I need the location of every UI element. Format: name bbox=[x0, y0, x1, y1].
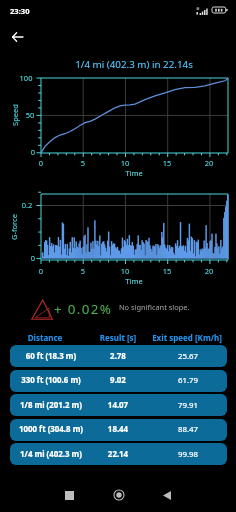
button[interactable] bbox=[10, 419, 227, 441]
staticText: G-force bbox=[9, 207, 19, 247]
staticText: 0.2 bbox=[15, 200, 39, 210]
staticText: 0 bbox=[21, 253, 45, 263]
staticText: Exit speed [Km/h] bbox=[137, 332, 236, 343]
staticText: 15 bbox=[155, 158, 179, 168]
staticText: 25.67 bbox=[158, 351, 218, 362]
staticText: 88.47 bbox=[158, 424, 218, 435]
staticText: 10 bbox=[113, 266, 137, 276]
button[interactable] bbox=[10, 443, 227, 465]
staticText: 5 bbox=[71, 158, 95, 168]
staticText: 79.91 bbox=[158, 400, 218, 411]
staticText: Speed bbox=[10, 95, 20, 135]
staticText: 20 bbox=[197, 158, 221, 168]
button[interactable]: Back bbox=[4, 24, 30, 50]
staticText: 1/4 mi (402.3 m) bbox=[6, 449, 96, 460]
staticText: 1000 ft (304.8 m) bbox=[6, 424, 96, 435]
button[interactable]: Home bbox=[101, 478, 137, 512]
staticText: 15 bbox=[155, 266, 179, 276]
staticText: 0 bbox=[29, 158, 53, 168]
button[interactable] bbox=[10, 394, 227, 416]
staticText: Result [s] bbox=[83, 332, 153, 343]
staticText: Time bbox=[114, 168, 154, 178]
staticText: 60 ft (18.3 m) bbox=[6, 351, 96, 362]
staticText: 50 bbox=[18, 110, 42, 120]
staticText: 0 bbox=[29, 266, 53, 276]
staticText: 1/8 mi (201.2 m) bbox=[6, 400, 96, 411]
staticText: 61.79 bbox=[158, 375, 218, 386]
staticText: 0 bbox=[21, 147, 45, 157]
staticText: Distance bbox=[10, 332, 80, 343]
staticText: 18.44 bbox=[88, 424, 148, 435]
staticText: 99.98 bbox=[158, 449, 218, 460]
staticText: 22.14 bbox=[88, 449, 148, 460]
button[interactable]: Recents bbox=[51, 478, 87, 512]
staticText: 2.78 bbox=[88, 351, 148, 362]
staticText: 9.02 bbox=[88, 375, 148, 386]
button[interactable]: Back bbox=[149, 478, 185, 512]
staticText: 1/4 mi (402.3 m) in 22.14s bbox=[74, 58, 194, 71]
staticText: 23:30 bbox=[10, 6, 30, 16]
staticText: 20 bbox=[197, 266, 221, 276]
staticText: + 0.02% bbox=[54, 300, 113, 318]
staticText: 5 bbox=[71, 266, 95, 276]
staticText: 330 ft (100.6 m) bbox=[6, 375, 96, 386]
button[interactable] bbox=[10, 345, 227, 367]
button[interactable] bbox=[10, 370, 227, 392]
staticText: 10 bbox=[113, 158, 137, 168]
staticText: 100 bbox=[14, 73, 38, 83]
staticText: 14.07 bbox=[88, 400, 148, 411]
staticText: No significant slope. bbox=[119, 302, 190, 312]
staticText: Time bbox=[114, 276, 154, 286]
